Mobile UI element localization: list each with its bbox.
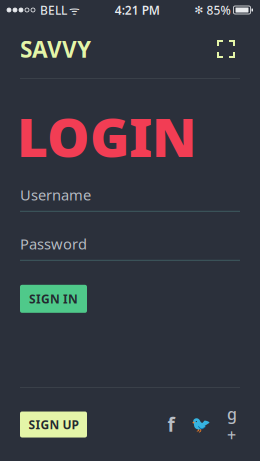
button[interactable]: Facebook — [164, 415, 178, 433]
staticText: f — [167, 412, 174, 437]
staticText: ✻ — [194, 4, 203, 16]
staticText: 85% — [206, 2, 230, 18]
staticText: LOGIN — [17, 101, 196, 172]
staticText: Username — [20, 185, 91, 205]
staticText: ᯤ — [69, 2, 80, 18]
button[interactable]: Twitter — [194, 415, 208, 433]
staticText: g+ — [227, 403, 237, 446]
staticText: SIGN IN — [29, 291, 78, 307]
button[interactable]: SIGN UP — [20, 411, 87, 437]
staticText: 🐦 — [191, 415, 211, 434]
staticText: SAVVY — [20, 34, 91, 64]
staticText: SIGN UP — [28, 416, 78, 432]
button[interactable]: Scan code — [212, 35, 240, 63]
staticText: 4:21 PM — [115, 2, 160, 18]
staticText: BELL — [37, 2, 67, 18]
button[interactable]: SIGN IN — [20, 285, 87, 313]
staticText: Password — [20, 234, 87, 254]
button[interactable]: Google Plus — [224, 415, 240, 433]
